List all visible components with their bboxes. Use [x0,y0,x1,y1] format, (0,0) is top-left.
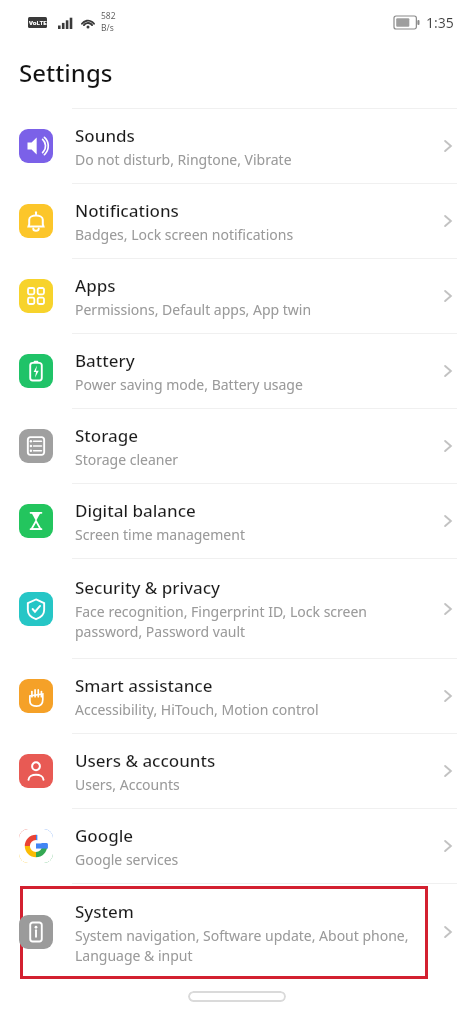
staticText: Google services [75,850,179,869]
staticText: Screen time management [75,525,245,544]
button[interactable]: Digital balance [0,484,473,558]
button[interactable]: System [0,884,473,980]
staticText: Google [75,824,134,847]
button[interactable]: Google [0,809,473,883]
button[interactable]: Storage [0,409,473,483]
staticText: 582 [101,10,116,22]
button[interactable]: Smart assistance [0,659,473,733]
staticText: Users & accounts [75,749,216,772]
staticText: Accessibility, HiTouch, Motion control [75,700,319,719]
staticText: Face recognition, Fingerprint ID, Lock s… [75,602,433,641]
staticText: Settings [19,56,113,89]
staticText: System [75,900,134,923]
staticText: Badges, Lock screen notifications [75,225,294,244]
button[interactable]: Users & accounts [0,734,473,808]
staticText: Storage cleaner [75,450,179,469]
staticText: B/s [101,22,114,34]
button[interactable]: Notifications [0,184,473,258]
staticText: Permissions, Default apps, App twin [75,300,312,319]
staticText: Security & privacy [75,576,221,599]
staticText: Do not disturb, Ringtone, Vibrate [75,150,292,169]
staticText: Smart assistance [75,674,213,697]
staticText: Battery [75,349,135,372]
staticText: Notifications [75,199,179,222]
staticText: Apps [75,274,116,297]
staticText: System navigation, Software update, Abou… [75,926,425,965]
staticText: 1:35 [426,13,454,32]
button[interactable]: Sounds [0,109,473,183]
button[interactable]: Security & privacy [0,559,473,658]
staticText: VoLTE [29,19,47,27]
button[interactable]: Battery [0,334,473,408]
staticText: Sounds [75,124,135,147]
staticText: Digital balance [75,499,196,522]
button[interactable]: Apps [0,259,473,333]
staticText: Users, Accounts [75,775,180,794]
staticText: Storage [75,424,139,447]
staticText: Power saving mode, Battery usage [75,375,303,394]
